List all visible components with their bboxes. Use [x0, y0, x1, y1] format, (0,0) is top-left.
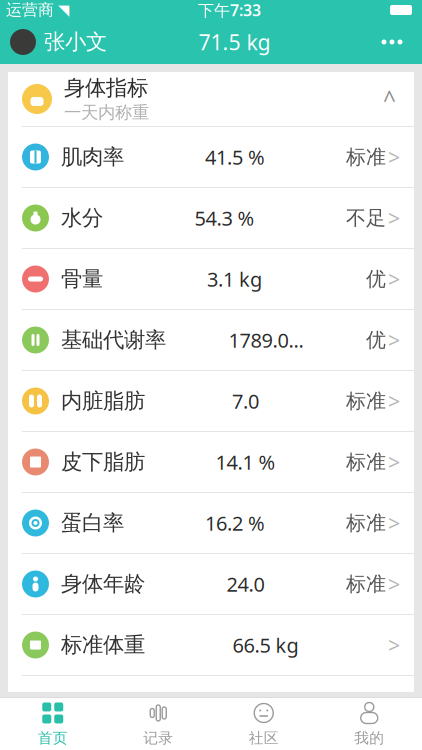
staticText: >	[388, 387, 400, 415]
staticText: 54.3 %	[194, 205, 254, 231]
staticText: 标准	[346, 450, 386, 474]
staticText: >	[388, 570, 400, 598]
staticText: 优	[366, 267, 386, 291]
button[interactable]: 骨量	[8, 249, 414, 309]
staticText: >	[388, 631, 400, 659]
staticText: 标准	[346, 389, 386, 413]
button[interactable]: 肌肉率	[8, 127, 414, 187]
button[interactable]: 皮下脂肪	[8, 432, 414, 492]
staticText: 社区	[249, 729, 279, 747]
staticText: 蛋白率	[61, 510, 124, 536]
staticText: >	[388, 204, 400, 232]
staticText: 皮下脂肪	[61, 449, 145, 475]
staticText: ^	[383, 84, 396, 114]
button[interactable]: 身体年龄	[8, 554, 414, 614]
staticText: 身体年龄	[61, 571, 145, 597]
staticText: 记录	[143, 729, 173, 747]
staticText: 71.5 kg	[198, 28, 270, 56]
staticText: 下午7:33	[198, 0, 261, 21]
staticText: 66.5 kg	[232, 632, 298, 658]
staticText: >	[388, 326, 400, 354]
button[interactable]: 社区	[211, 698, 316, 750]
button[interactable]: 我的	[316, 698, 422, 750]
button[interactable]: 蛋白率	[8, 493, 414, 553]
staticText: 骨量	[61, 266, 103, 292]
button[interactable]: 水分	[8, 188, 414, 248]
staticText: 首页	[38, 729, 68, 747]
staticText: 24.0	[226, 571, 264, 597]
staticText: 1789.0...	[228, 327, 303, 353]
staticText: 运营商	[6, 0, 54, 20]
staticText: 身体指标	[64, 75, 148, 101]
staticText: 内脏脂肪	[61, 388, 145, 414]
button[interactable]: 身体指标	[8, 72, 414, 126]
staticText: 7.0	[232, 388, 259, 414]
staticText: ◥	[58, 2, 69, 18]
staticText: 16.2 %	[205, 510, 265, 536]
staticText: 不足	[346, 206, 386, 230]
staticText: >	[388, 143, 400, 171]
button[interactable]: 记录	[105, 698, 211, 750]
staticText: 3.1 kg	[207, 266, 262, 292]
button[interactable]: 标准体重	[8, 615, 414, 675]
button[interactable]: 首页	[0, 698, 105, 750]
staticText: 标准体重	[61, 632, 145, 658]
staticText: 基础代谢率	[61, 327, 166, 353]
staticText: 优	[366, 328, 386, 352]
staticText: 水分	[61, 205, 103, 231]
staticText: 14.1 %	[215, 449, 275, 475]
button[interactable]: 内脏脂肪	[8, 371, 414, 431]
staticText: 标准	[346, 511, 386, 535]
staticText: 肌肉率	[61, 144, 124, 170]
staticText: >	[388, 509, 400, 537]
staticText: 标准	[346, 145, 386, 169]
staticText: 41.5 %	[205, 144, 265, 170]
button[interactable]: More options	[362, 22, 422, 62]
staticText: 一天内称重	[64, 102, 149, 123]
button[interactable]: 基础代谢率	[8, 310, 414, 370]
staticText: 标准	[346, 572, 386, 596]
staticText: >	[388, 265, 400, 293]
staticText: 我的	[354, 729, 384, 747]
staticText: >	[388, 448, 400, 476]
staticText: 张小文	[44, 29, 107, 55]
button[interactable]: Profile 张小文	[0, 29, 107, 55]
